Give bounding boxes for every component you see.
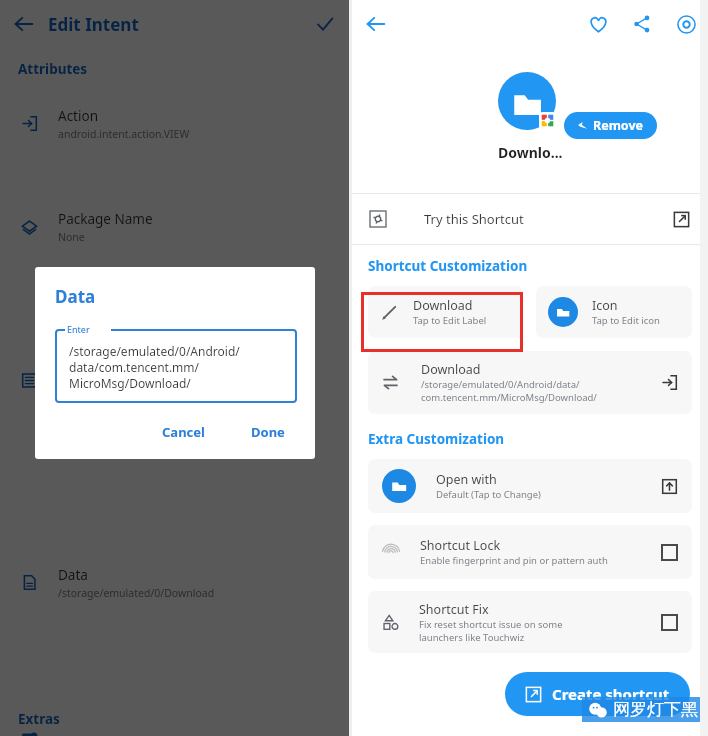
staticText: Edit Intent [48, 13, 139, 36]
staticText: launchers like Touchwiz [419, 631, 525, 644]
button[interactable]: Action [0, 84, 349, 163]
staticText: Shortcut Lock [420, 537, 501, 554]
staticText: Open with [436, 471, 497, 488]
staticText: Attributes [18, 60, 88, 78]
staticText: com.tencent.mm/MicroMsg/Download/ [421, 391, 597, 404]
staticText: /storage/emulated/0/Android/ [69, 343, 240, 359]
button[interactable]: Done [239, 417, 297, 447]
staticText: Action [58, 107, 98, 125]
staticText: Cancel [162, 423, 205, 441]
button[interactable]: Class Name [0, 291, 349, 469]
staticText: Package Name [58, 210, 153, 228]
button[interactable]: Favorite [576, 2, 620, 46]
button[interactable]: Try this Shortcut [352, 194, 708, 244]
staticText: Extras [18, 710, 60, 728]
staticText: Try this Shortcut [424, 210, 524, 228]
button[interactable]: Package Name [0, 163, 349, 291]
staticText: MicroMsg/Download/ [69, 375, 191, 391]
staticText: Done [251, 423, 285, 441]
staticText: Downlo... [498, 143, 563, 162]
button[interactable]: Share [620, 2, 664, 46]
staticText: Tap to Edit icon [592, 314, 660, 327]
button[interactable]: Toggle [661, 544, 678, 561]
staticText: data/com.tencent.mm/ [69, 359, 200, 375]
staticText: Icon [592, 297, 618, 314]
button[interactable]: Cancel [150, 417, 217, 447]
button[interactable]: Shortcut Lock [368, 525, 692, 579]
staticText: Enter [67, 323, 90, 335]
staticText: Extra Customization [368, 430, 505, 448]
staticText: /storage/emulated/0/Download [58, 586, 215, 600]
button[interactable]: Icon [536, 286, 692, 338]
staticText: Default (Tap to Change) [436, 488, 541, 501]
staticText: Shortcut Customization [368, 257, 528, 275]
staticText: 网罗灯下黑 [613, 699, 698, 720]
staticText: /storage/emulated/0/Android/data/ [421, 378, 580, 391]
button[interactable]: Open with [368, 459, 692, 513]
button[interactable]: Shortcut Fix [368, 591, 692, 653]
button[interactable]: Toggle [661, 614, 678, 631]
staticText: None [58, 230, 85, 244]
button[interactable]: Create shortcut [505, 672, 690, 716]
staticText: Download [413, 297, 473, 314]
staticText: Remove [593, 117, 644, 134]
staticText: Fix reset shortcut issue on some [419, 618, 563, 631]
button[interactable]: Data [0, 469, 349, 696]
staticText: Tap to Edit Label [413, 314, 487, 327]
staticText: None [58, 383, 85, 397]
staticText: android.intent.action.VIEW [58, 127, 190, 141]
button[interactable]: Download [368, 286, 523, 338]
button[interactable]: Help [664, 2, 708, 46]
staticText: Create shortcut [552, 684, 670, 704]
button[interactable]: Download [368, 351, 692, 414]
button[interactable]: Save [301, 0, 349, 48]
staticText: Download [421, 361, 481, 378]
button[interactable]: Remove [564, 112, 657, 139]
button[interactable]: Back [0, 0, 48, 48]
staticText: Shortcut Fix [419, 601, 489, 618]
staticText: Data [58, 566, 88, 584]
staticText: Class Name [58, 363, 133, 381]
button[interactable]: Back [352, 0, 400, 48]
button[interactable]: Extra [0, 734, 349, 736]
staticText: Enable fingerprint and pin or pattern au… [420, 554, 608, 567]
staticText: Data [55, 285, 96, 308]
